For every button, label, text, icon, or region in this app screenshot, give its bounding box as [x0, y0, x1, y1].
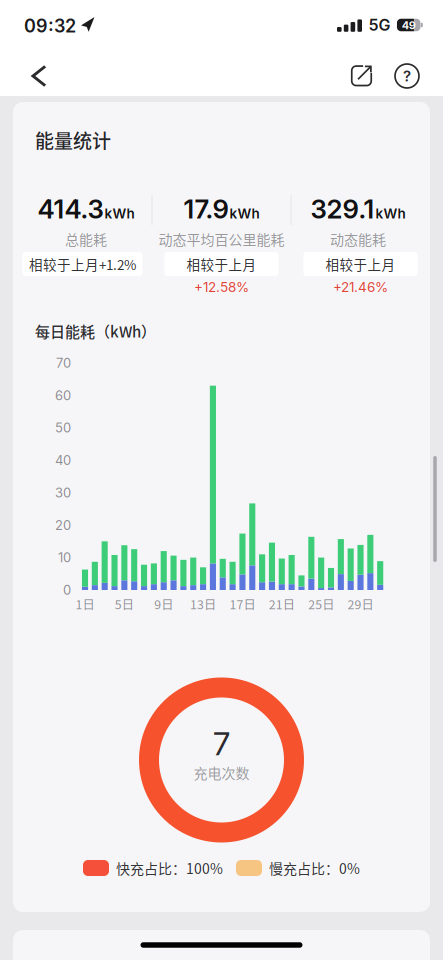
staticText: 动态平均百公里能耗: [158, 229, 284, 249]
staticText: 21日: [269, 595, 295, 613]
staticText: 25日: [308, 595, 334, 613]
staticText: 0: [63, 582, 71, 598]
staticText: kWh: [104, 205, 134, 222]
button[interactable]: Help: [387, 54, 427, 98]
staticText: 329.1: [310, 193, 374, 225]
staticText: 每日能耗（kWh）: [35, 320, 156, 342]
staticText: kWh: [375, 205, 405, 222]
staticText: 总能耗: [65, 229, 107, 249]
staticText: 40: [55, 452, 71, 468]
staticText: 50: [55, 420, 71, 436]
staticText: 13日: [190, 595, 216, 613]
staticText: 5G: [368, 15, 390, 35]
staticText: 09:32: [24, 15, 76, 37]
staticText: +21.46%: [333, 279, 388, 295]
staticText: 能量统计: [35, 126, 111, 154]
staticText: 1日: [75, 595, 94, 613]
staticText: 动态能耗: [330, 229, 386, 249]
button[interactable]: Share: [341, 54, 381, 98]
staticText: 70: [56, 355, 71, 371]
staticText: +12.58%: [194, 279, 249, 295]
staticText: kWh: [229, 205, 259, 222]
staticText: 414.3: [37, 193, 103, 225]
staticText: 7: [213, 724, 230, 763]
staticText: 慢充占比：0%: [269, 858, 360, 878]
staticText: 49: [402, 18, 416, 32]
staticText: 17日: [229, 595, 255, 613]
staticText: 5日: [115, 595, 134, 613]
staticText: 相较于上月+1.2%: [29, 254, 136, 274]
staticText: 快充占比：100%: [116, 858, 223, 878]
staticText: 充电次数: [193, 762, 249, 783]
staticText: 9日: [154, 595, 173, 613]
staticText: 17.9: [183, 193, 228, 225]
staticText: 30: [55, 485, 71, 501]
staticText: 60: [55, 388, 71, 403]
staticText: 相较于上月: [186, 254, 256, 274]
staticText: 10: [58, 550, 71, 565]
staticText: 相较于上月: [325, 254, 395, 274]
staticText: 20: [55, 517, 71, 533]
staticText: ?: [403, 67, 411, 85]
button[interactable]: Back: [16, 54, 60, 98]
staticText: 29日: [347, 595, 373, 613]
